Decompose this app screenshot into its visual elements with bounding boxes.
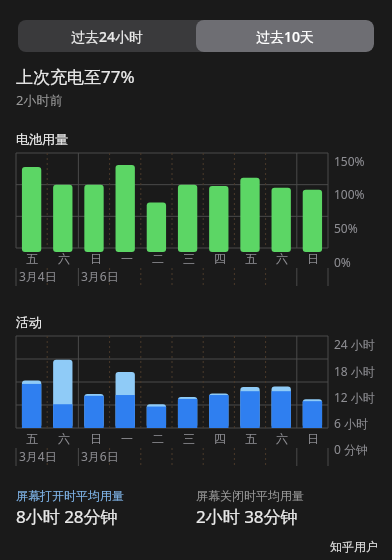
- staticText: 2小时 38分钟: [196, 505, 298, 528]
- staticText: 100%: [334, 186, 365, 202]
- staticText: 六: [276, 431, 288, 446]
- staticText: 过去10天: [256, 27, 315, 46]
- button[interactable]: 屏幕打开时平均用量: [16, 488, 196, 528]
- staticText: 电池用量: [16, 131, 68, 147]
- staticText: 6 小时: [334, 415, 368, 431]
- staticText: 3月4日: [19, 268, 57, 284]
- staticText: 8小时 28分钟: [16, 505, 118, 528]
- staticText: 一: [121, 431, 133, 446]
- staticText: 上次充电至77%: [16, 65, 135, 88]
- staticText: 2小时前: [16, 91, 63, 109]
- staticText: 3月6日: [81, 268, 119, 284]
- staticText: 四: [214, 251, 226, 266]
- staticText: 0 分钟: [334, 441, 368, 457]
- staticText: 3月6日: [81, 448, 119, 464]
- button[interactable]: 屏幕关闭时平均用量: [196, 488, 376, 528]
- staticText: 24 小时: [334, 336, 375, 352]
- staticText: 二: [152, 251, 164, 266]
- staticText: 12 小时: [334, 389, 375, 405]
- staticText: 六: [58, 251, 70, 266]
- button[interactable]: 过去24小时: [18, 20, 196, 52]
- staticText: 50%: [334, 220, 358, 236]
- staticText: 日: [307, 251, 319, 266]
- staticText: 知乎用户: [330, 539, 378, 554]
- staticText: 五: [245, 251, 257, 266]
- staticText: 二: [152, 431, 164, 446]
- staticText: 六: [276, 251, 288, 266]
- staticText: 0%: [334, 254, 351, 270]
- staticText: 150%: [334, 153, 365, 169]
- staticText: 三: [183, 431, 195, 446]
- staticText: 日: [307, 431, 319, 446]
- staticText: 活动: [16, 314, 42, 330]
- staticText: 过去24小时: [71, 27, 144, 46]
- button[interactable]: 过去10天: [196, 20, 374, 52]
- staticText: 日: [90, 431, 102, 446]
- staticText: 3月4日: [19, 448, 57, 464]
- staticText: 18 小时: [334, 363, 375, 379]
- staticText: 屏幕打开时平均用量: [16, 488, 124, 503]
- staticText: 六: [58, 431, 70, 446]
- staticText: 三: [183, 251, 195, 266]
- staticText: 五: [26, 431, 38, 446]
- staticText: 五: [245, 431, 257, 446]
- staticText: 五: [26, 251, 38, 266]
- staticText: 日: [90, 251, 102, 266]
- staticText: 一: [121, 251, 133, 266]
- staticText: 四: [214, 431, 226, 446]
- staticText: 屏幕关闭时平均用量: [196, 488, 304, 503]
